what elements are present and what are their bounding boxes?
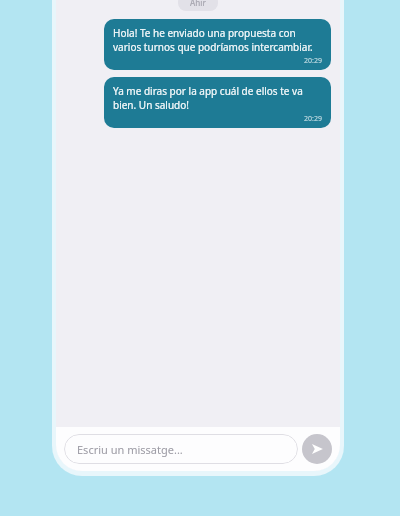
- staticText: 20:29: [304, 114, 322, 124]
- button[interactable]: Hola! Te he enviado una propuesta con va…: [104, 19, 331, 70]
- button[interactable]: Ya me diras por la app cuál de ellos te …: [104, 77, 331, 128]
- staticText: Escriu un missatge...: [77, 442, 183, 457]
- staticText: Hola! Te he enviado una propuesta con va…: [113, 26, 322, 54]
- button[interactable]: Escriu un missatge...: [64, 434, 298, 464]
- staticText: Ahir: [190, 0, 206, 8]
- staticText: 20:29: [304, 56, 322, 66]
- staticText: Ya me diras por la app cuál de ellos te …: [113, 84, 322, 112]
- button[interactable]: Send: [302, 434, 332, 464]
